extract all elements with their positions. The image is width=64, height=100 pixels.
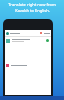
button[interactable] [5, 38, 51, 43]
button[interactable] [5, 30, 51, 36]
staticText: Kazakh to English. [15, 8, 50, 13]
button[interactable] [5, 63, 51, 68]
staticText: Translate right now from [8, 2, 56, 7]
